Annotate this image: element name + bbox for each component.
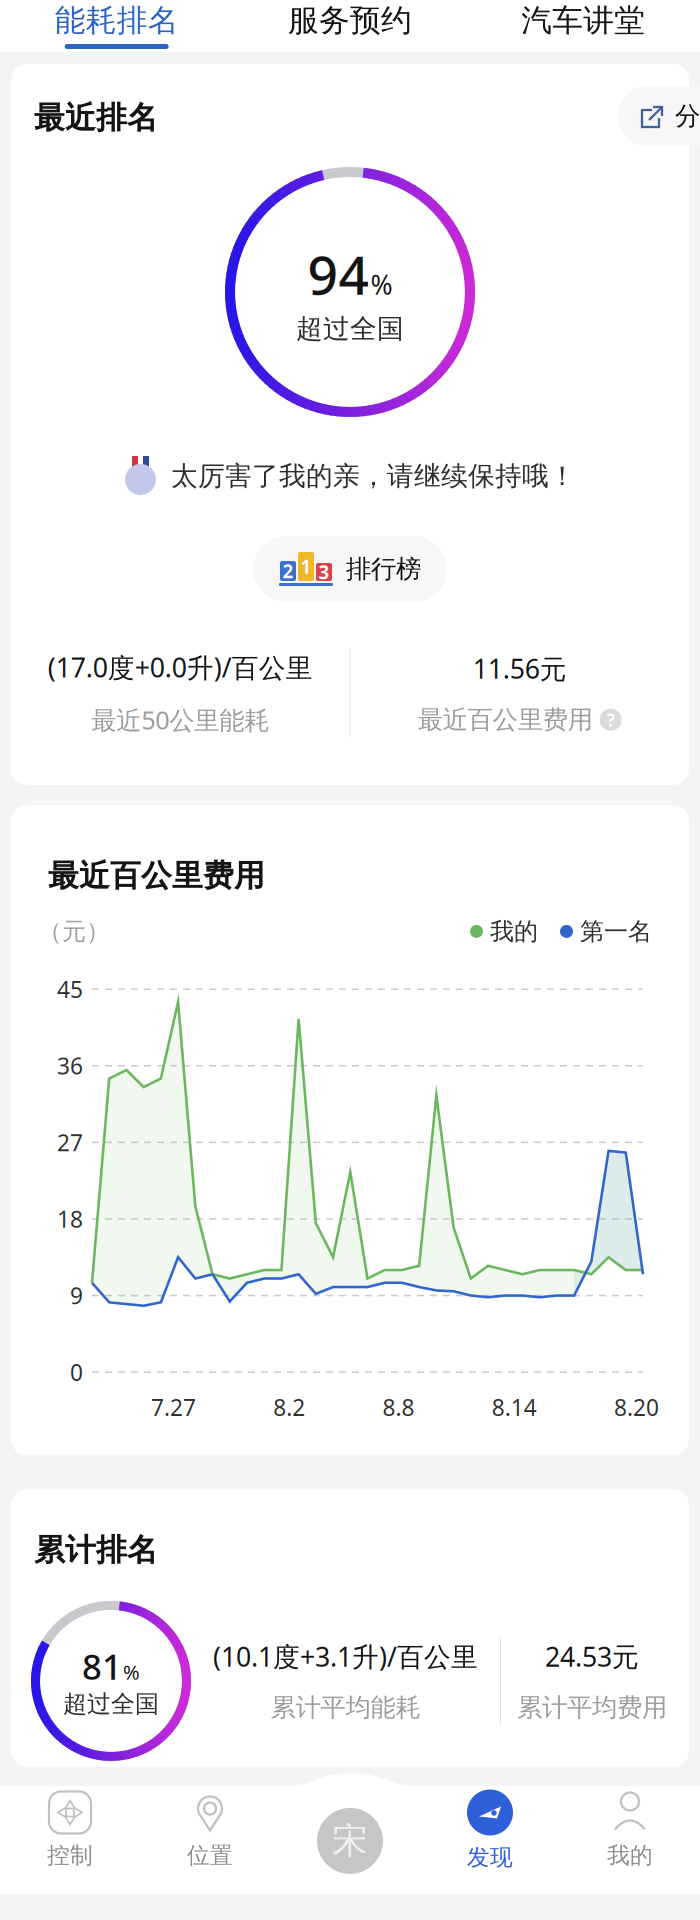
staticText: 服务预约 [288,2,412,39]
staticText: 我的 [490,917,538,946]
staticText: 8.20 [614,1392,659,1422]
staticText: 3 [318,560,329,584]
staticText: 最近百公里费用 [418,704,593,735]
staticText: 8.2 [273,1392,305,1422]
staticText: 累计平均能耗 [270,1692,420,1723]
staticText: 最近百公里费用 [48,857,265,895]
staticText: 27 [57,1127,83,1157]
staticText: 8.8 [382,1392,414,1422]
staticText: 45 [57,974,83,1004]
staticText: 累计排名 [34,1531,158,1569]
button[interactable]: 控制 [0,1767,140,1894]
staticText: （元） [38,917,110,946]
staticText: 18 [57,1204,83,1234]
staticText: 1 [300,554,311,579]
button[interactable]: 发现 [420,1767,560,1894]
staticText: 36 [57,1051,83,1081]
staticText: % [123,1659,140,1685]
staticText: 0 [70,1357,83,1387]
staticText: 81 [82,1643,122,1689]
staticText: (17.0度+0.0升)/百公里 [48,649,313,685]
staticText: (10.1度+3.1升)/百公里 [213,1639,478,1674]
staticText: 位置 [187,1841,233,1869]
button[interactable]: 汽车讲堂 [467,0,700,52]
staticText: 7.27 [151,1392,196,1422]
button[interactable]: 服务预约 [233,0,467,52]
staticText: 能耗排名 [55,2,179,39]
button[interactable]: 车辆 [317,1808,383,1874]
staticText: 2 [282,559,293,583]
staticText: 发现 [467,1843,513,1871]
button[interactable]: 能耗排名 [0,0,233,52]
staticText: 太厉害了我的亲，请继续保持哦！ [171,460,576,492]
button[interactable]: 分享 [617,86,700,146]
staticText: 9 [70,1280,83,1311]
staticText: 24.53元 [545,1639,639,1674]
staticText: 最近排名 [34,99,158,137]
staticText: 第一名 [580,917,652,946]
button[interactable]: 位置 [140,1767,280,1894]
staticText: ? [607,708,615,731]
staticText: 累计平均费用 [517,1692,667,1723]
button[interactable]: 我的 [560,1767,700,1894]
staticText: 94 [307,239,369,309]
staticText: 8.14 [492,1392,537,1422]
staticText: 11.56元 [473,651,567,686]
staticText: 控制 [47,1841,93,1869]
staticText: 超过全国 [296,312,404,345]
staticText: 最近50公里能耗 [91,703,269,736]
staticText: 宋 [332,1819,368,1863]
staticText: 我的 [607,1841,653,1869]
staticText: 排行榜 [346,553,421,584]
staticText: 超过全国 [63,1689,159,1719]
button[interactable]: 2 [253,536,447,602]
staticText: 分享 [675,100,700,131]
staticText: % [370,267,392,302]
staticText: 汽车讲堂 [521,2,645,39]
